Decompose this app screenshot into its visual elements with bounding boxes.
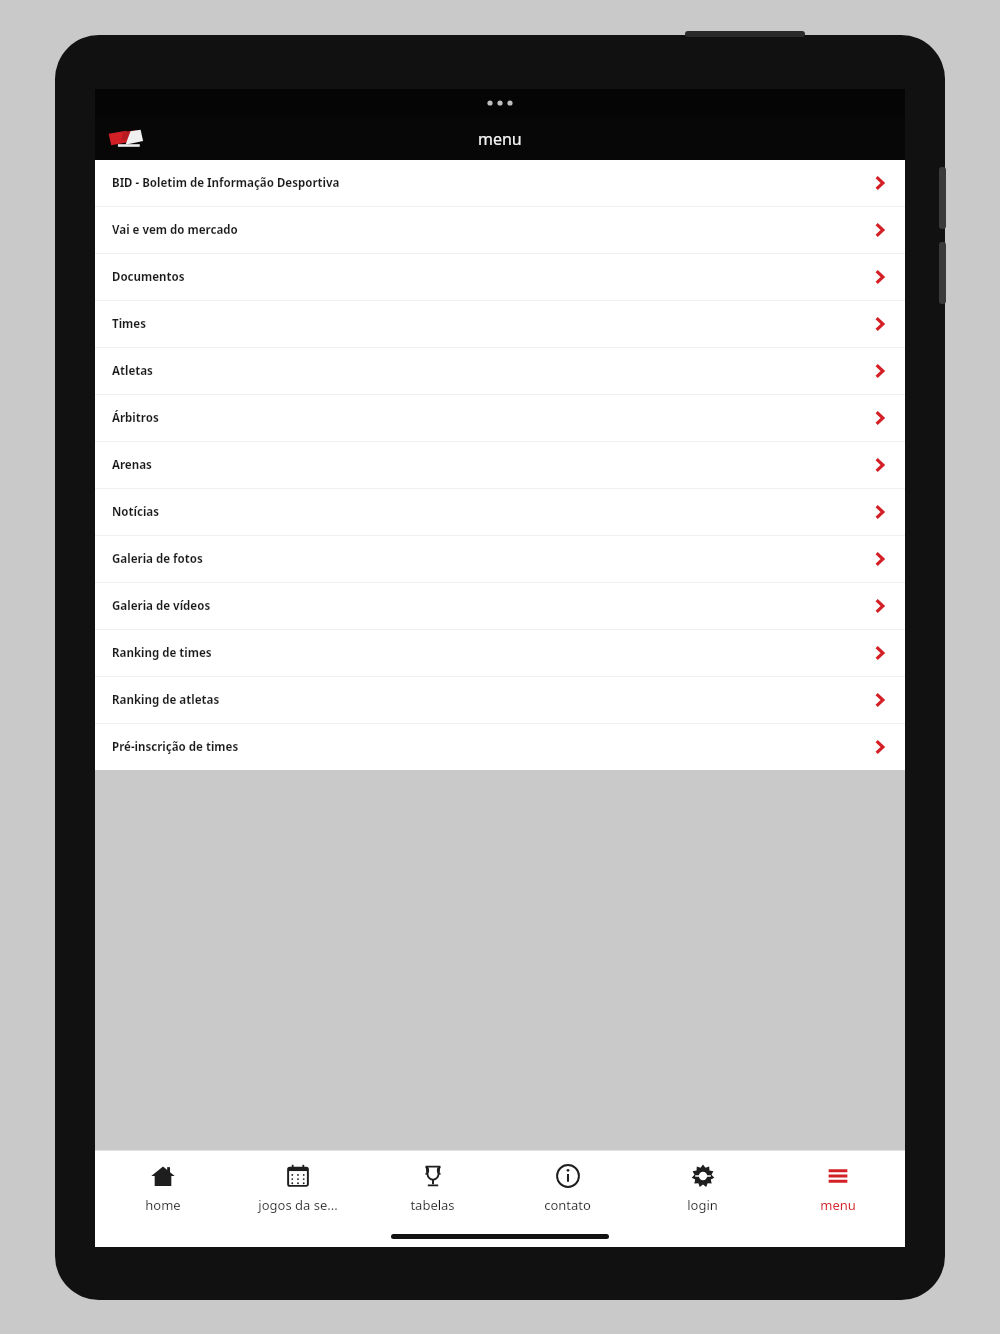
button[interactable]: Notícias bbox=[95, 489, 905, 535]
staticText: home bbox=[145, 1196, 181, 1214]
staticText: BID - Boletim de Informação Desportiva bbox=[112, 175, 873, 191]
button[interactable]: Atletas bbox=[95, 348, 905, 394]
button[interactable]: Ranking de times bbox=[95, 630, 905, 676]
button[interactable]: BID - Boletim de Informação Desportiva bbox=[95, 160, 905, 206]
staticText: Documentos bbox=[112, 269, 873, 285]
staticText: menu bbox=[820, 1196, 856, 1214]
button[interactable]: Documentos bbox=[95, 254, 905, 300]
button[interactable]: Galeria de fotos bbox=[95, 536, 905, 582]
button[interactable]: Times bbox=[95, 301, 905, 347]
staticText: Vai e vem do mercado bbox=[112, 222, 873, 238]
button[interactable]: Árbitros bbox=[95, 395, 905, 441]
button[interactable]: Galeria de vídeos bbox=[95, 583, 905, 629]
staticText: jogos da se... bbox=[258, 1196, 338, 1214]
button[interactable]: Ranking de atletas bbox=[95, 677, 905, 723]
staticText: menu bbox=[478, 128, 522, 150]
button[interactable]: Arenas bbox=[95, 442, 905, 488]
staticText: Ranking de times bbox=[112, 645, 873, 661]
staticText: Pré-inscrição de times bbox=[112, 739, 873, 755]
staticText: contato bbox=[544, 1196, 591, 1214]
staticText: tabelas bbox=[410, 1196, 455, 1214]
button[interactable]: Pré-inscrição de times bbox=[95, 724, 905, 770]
staticText: Galeria de vídeos bbox=[112, 598, 873, 614]
button[interactable]: jogos da se... bbox=[230, 1151, 365, 1225]
staticText: Atletas bbox=[112, 363, 873, 379]
button[interactable]: Vai e vem do mercado bbox=[95, 207, 905, 253]
button[interactable]: tabelas bbox=[365, 1151, 500, 1225]
staticText: Arenas bbox=[112, 457, 873, 473]
staticText: Galeria de fotos bbox=[112, 551, 873, 567]
button[interactable]: Logo bbox=[107, 126, 149, 152]
staticText: Times bbox=[112, 316, 873, 332]
staticText: Árbitros bbox=[112, 410, 873, 426]
button[interactable]: menu bbox=[770, 1151, 905, 1225]
staticText: Notícias bbox=[112, 504, 873, 520]
button[interactable]: login bbox=[635, 1151, 770, 1225]
button[interactable]: home bbox=[95, 1151, 230, 1225]
staticText: login bbox=[687, 1196, 718, 1214]
staticText: Ranking de atletas bbox=[112, 692, 873, 708]
button[interactable]: contato bbox=[500, 1151, 635, 1225]
